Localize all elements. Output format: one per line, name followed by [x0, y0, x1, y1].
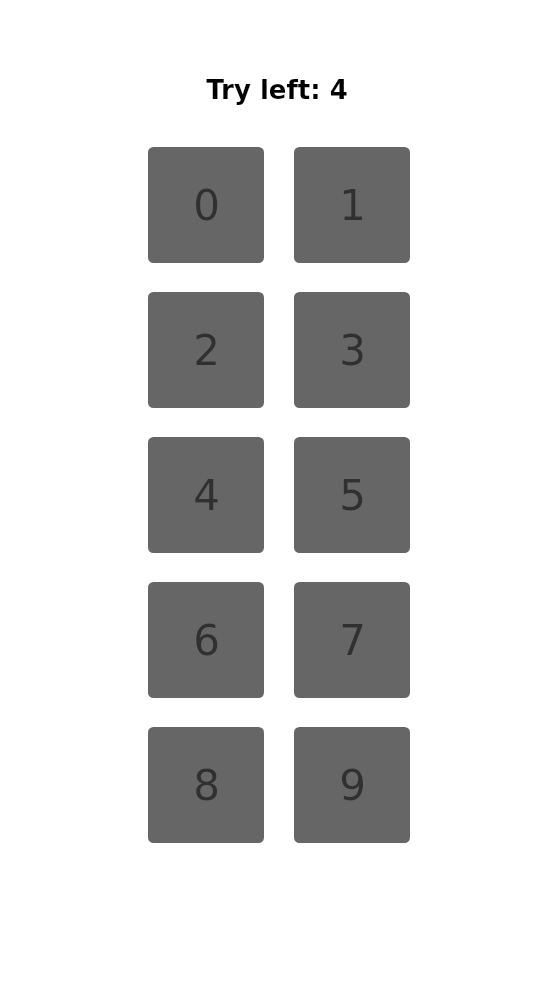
- button[interactable]: 3: [294, 292, 410, 408]
- button[interactable]: 5: [294, 437, 410, 553]
- staticText: 1: [339, 181, 366, 230]
- button[interactable]: 8: [148, 727, 264, 843]
- button[interactable]: 6: [148, 582, 264, 698]
- staticText: 2: [193, 326, 220, 375]
- staticText: 8: [193, 761, 220, 810]
- button[interactable]: 2: [148, 292, 264, 408]
- button[interactable]: 4: [148, 437, 264, 553]
- staticText: 6: [193, 616, 220, 665]
- button[interactable]: 0: [148, 147, 264, 263]
- staticText: Try left: 4: [206, 75, 348, 105]
- staticText: 0: [193, 181, 220, 230]
- staticText: 9: [339, 761, 366, 810]
- button[interactable]: 1: [294, 147, 410, 263]
- staticText: 5: [339, 471, 366, 520]
- button[interactable]: 7: [294, 582, 410, 698]
- staticText: 7: [339, 616, 366, 665]
- button[interactable]: 9: [294, 727, 410, 843]
- staticText: 4: [193, 471, 220, 520]
- staticText: 3: [339, 326, 366, 375]
